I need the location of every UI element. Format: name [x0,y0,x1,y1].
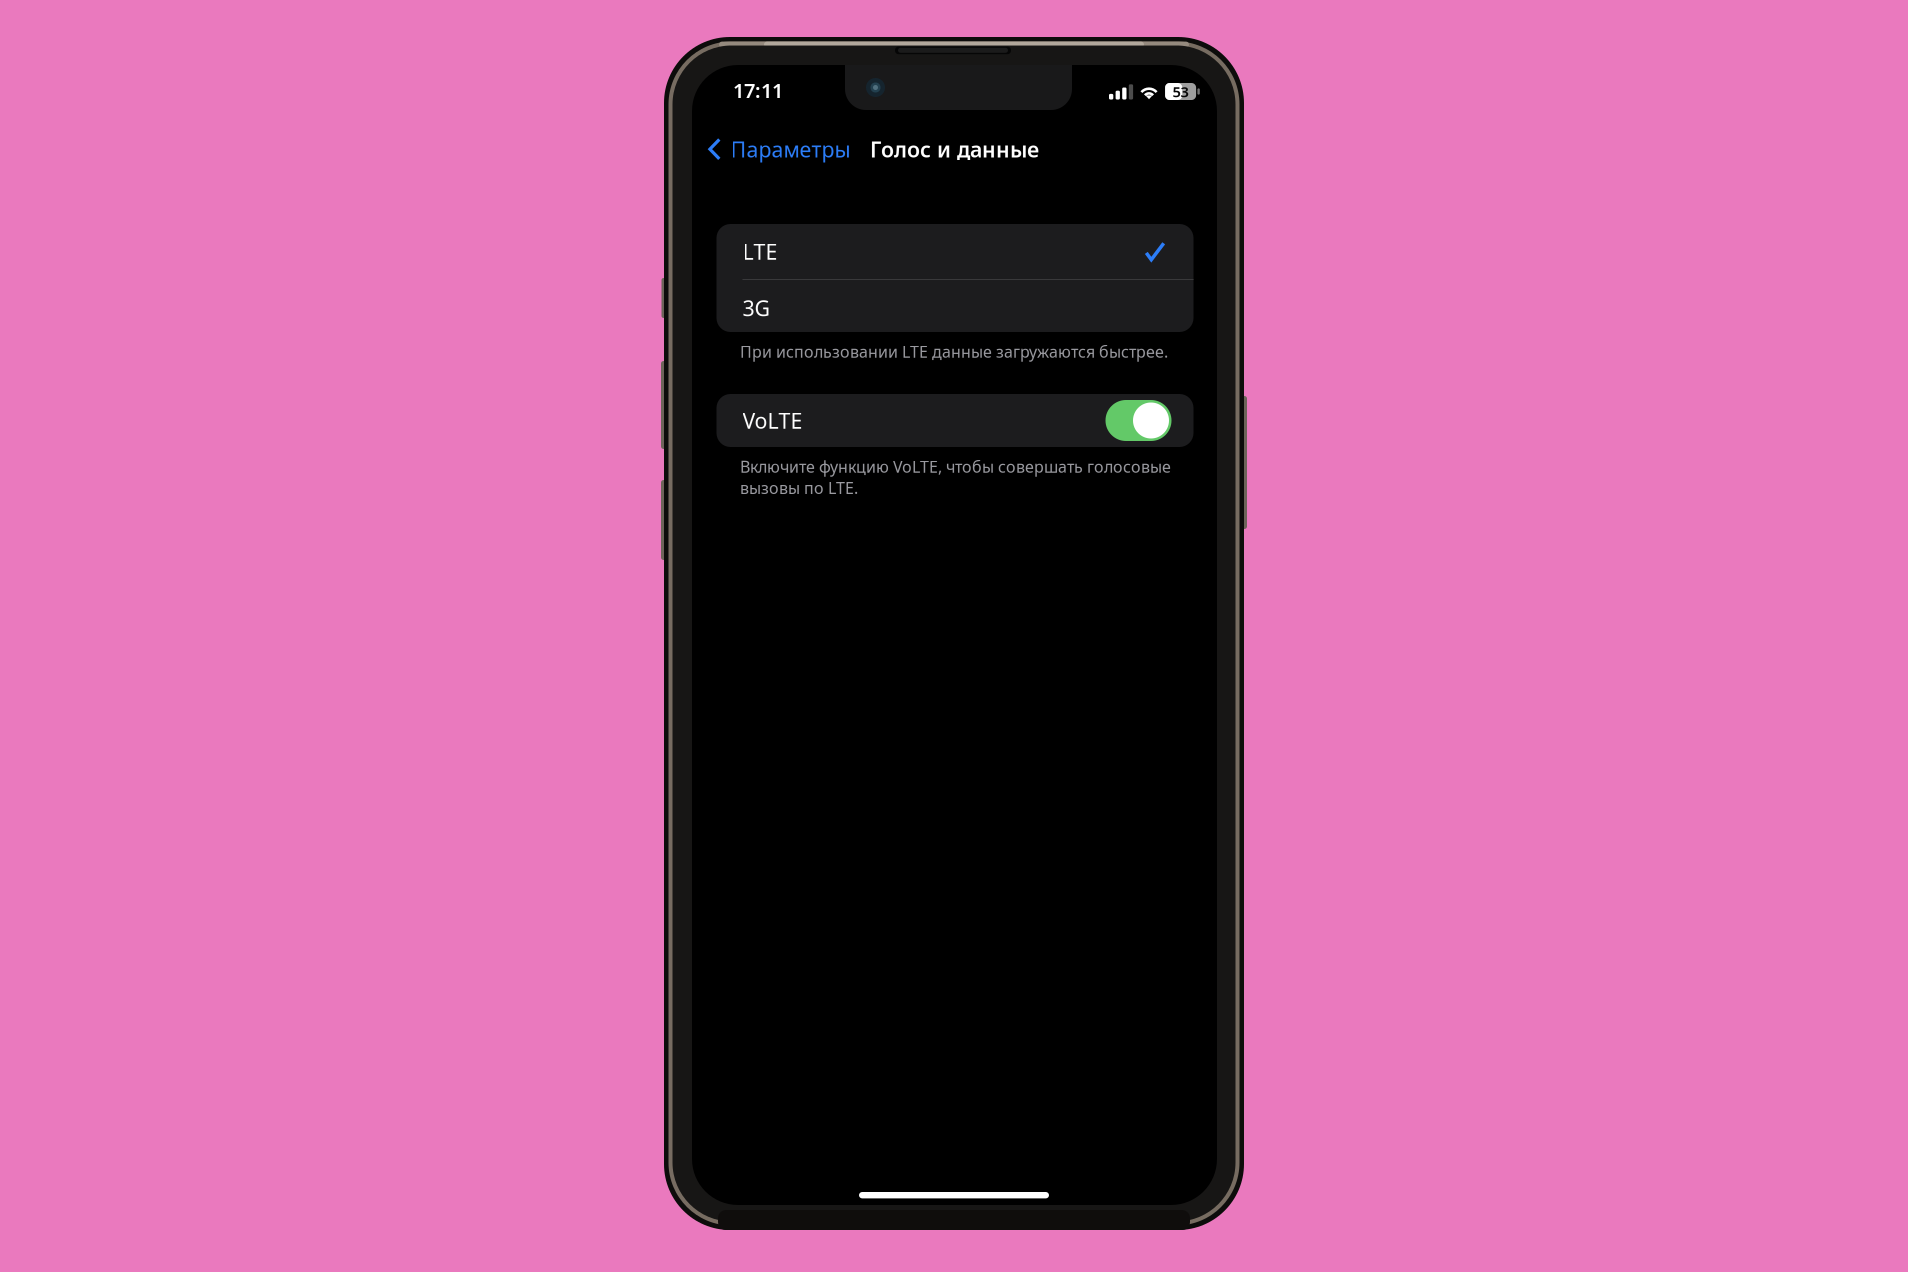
staticText: Голос и данные [870,135,1039,163]
staticText: Включите функцию VoLTE, чтобы совершать … [740,456,1171,498]
staticText: 3G [742,294,770,322]
staticText: При использовании LTE данные загружаются… [740,341,1168,362]
button[interactable]: 3G [716,280,1193,332]
staticText: LTE [742,237,777,266]
staticText: VoLTE [742,406,802,435]
staticText: 17:11 [733,77,783,104]
staticText: 53 [1173,82,1189,101]
button[interactable]: LTE [716,224,1193,279]
button[interactable]: VoLTE [1105,400,1171,441]
button[interactable]: Назад, Параметры [704,127,853,171]
staticText: Параметры [730,135,850,163]
